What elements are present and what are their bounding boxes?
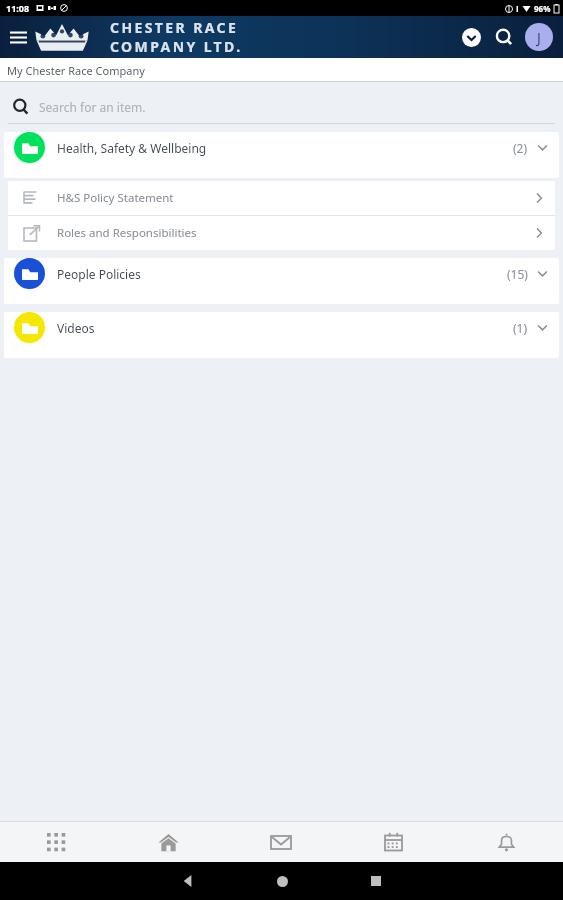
staticText: Health, Safety & Wellbeing <box>57 140 207 156</box>
staticText: COMPANY LTD. <box>110 37 243 56</box>
staticText: (15) <box>507 266 528 282</box>
staticText: Videos <box>57 320 95 336</box>
button[interactable]: Videos <box>4 312 559 358</box>
staticText: People Policies <box>57 266 141 282</box>
button[interactable]: Search for an item. <box>8 90 555 124</box>
button[interactable]: Menu <box>4 23 32 51</box>
button[interactable]: Search <box>492 25 516 49</box>
staticText: Search for an item. <box>39 99 146 115</box>
staticText: CHESTER RACE <box>110 18 239 37</box>
staticText: H&S Policy Statement <box>57 190 174 206</box>
staticText: 11:08 <box>6 2 30 14</box>
button[interactable]: People Policies <box>4 258 559 304</box>
button[interactable]: Mail <box>224 822 337 862</box>
button[interactable]: Notifications <box>450 822 563 862</box>
button[interactable]: Health, Safety & Wellbeing <box>4 132 559 178</box>
staticText: 96% <box>534 3 551 14</box>
staticText: (1) <box>513 320 528 336</box>
button[interactable]: Home <box>235 876 329 887</box>
button[interactable]: Back <box>141 875 235 887</box>
button[interactable]: Recents <box>329 876 423 886</box>
button[interactable]: Home <box>112 822 224 862</box>
staticText: Roles and Responsibilities <box>57 225 197 241</box>
button[interactable]: Profile <box>525 23 553 51</box>
staticText: My Chester Race Company <box>7 63 145 78</box>
button[interactable]: Roles and Responsibilities <box>8 216 555 250</box>
staticText: (2) <box>513 140 528 156</box>
button[interactable]: Apps <box>0 822 112 862</box>
button[interactable]: Calendar <box>337 822 450 862</box>
staticText: J <box>537 28 541 47</box>
button[interactable]: H&S Policy Statement <box>8 181 555 215</box>
button[interactable]: Expand <box>459 25 483 49</box>
